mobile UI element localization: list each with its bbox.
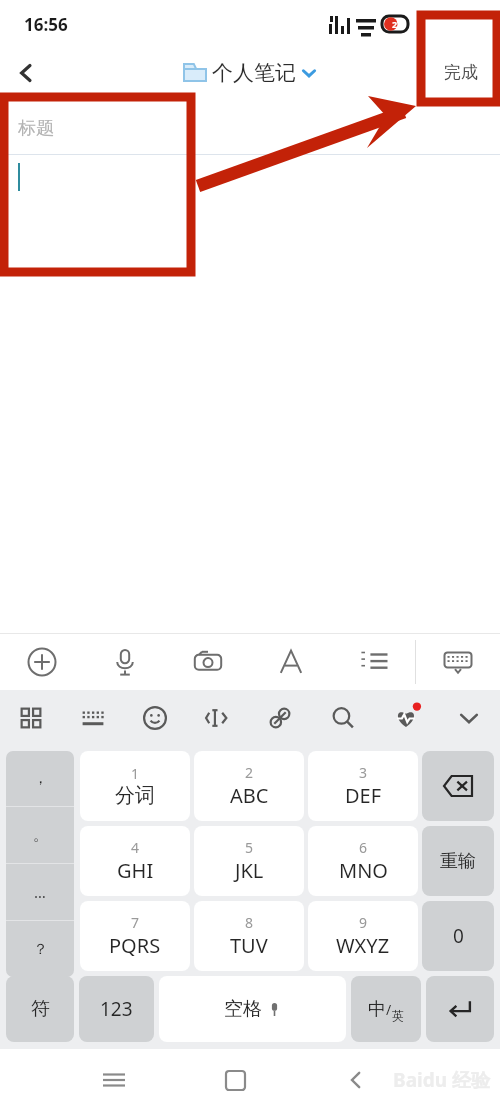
button[interactable]: 完成 [436,54,486,91]
button[interactable]: … [6,864,74,920]
staticText: 16:56 [24,13,68,36]
staticText: GHI [117,857,154,884]
button[interactable]: 8 [194,901,304,971]
staticText: 个人笔记 [212,60,296,86]
button[interactable]: Clipboard [248,690,311,746]
staticText: 8 [245,913,254,932]
button[interactable]: Delete [422,751,494,821]
button[interactable]: 空格 [159,976,346,1042]
staticText: 分词 [115,783,155,808]
staticText: 英 [392,1008,404,1023]
staticText: 3 [359,763,368,782]
staticText: 7 [131,913,140,932]
button[interactable]: 0 [422,901,494,971]
button[interactable]: Move cursor [186,690,248,746]
button[interactable]: Apps [0,690,62,746]
button[interactable]: Health [374,690,437,746]
button[interactable]: Voice [83,634,166,690]
button[interactable]: Add [0,634,83,690]
button[interactable]: Keyboard layout [62,690,124,746]
button[interactable]: Back [0,48,52,97]
staticText: 27 [392,18,403,30]
staticText: 符 [31,997,50,1021]
staticText: 0 [453,923,464,949]
staticText: / [386,1000,392,1019]
button[interactable]: 3 [308,751,418,821]
staticText: 2 [245,763,254,782]
staticText: 空格 [224,997,262,1021]
button[interactable]: Emoji [124,690,186,746]
staticText: 6 [359,838,368,857]
button[interactable]: Camera [166,634,249,690]
button[interactable]: 中 [351,976,421,1042]
staticText: JKL [235,857,264,884]
staticText: PQRS [109,932,161,959]
staticText: 标题 [18,117,54,140]
staticText: 。 [33,826,48,845]
button[interactable]: 4 [80,826,190,896]
staticText: MNO [339,857,388,884]
staticText: … [34,882,46,902]
button[interactable]: 符 [6,976,74,1042]
button[interactable]: Hide keyboard [416,634,500,690]
staticText: 1 [131,764,140,783]
staticText: WXYZ [336,932,390,959]
button[interactable]: 6 [308,826,418,896]
button[interactable]: 7 [80,901,190,971]
button[interactable]: Format text [249,634,332,690]
button[interactable]: 5 [194,826,304,896]
staticText: 9 [359,913,368,932]
staticText: 4 [131,838,140,857]
button[interactable]: 123 [79,976,154,1042]
button[interactable]: Back [332,1056,380,1104]
button[interactable]: Recents [90,1056,138,1104]
staticText: 123 [100,996,133,1022]
button[interactable]: Enter [426,976,494,1042]
button[interactable]: 1 [80,751,190,821]
button[interactable]: Hide keyboard [437,690,500,746]
staticText: 重输 [440,850,476,873]
button[interactable]: 重输 [422,826,494,896]
button[interactable]: ， [6,751,74,806]
staticText: 完成 [444,62,478,83]
staticText: 5 [245,838,254,857]
button[interactable]: 2 [194,751,304,821]
staticText: 中 [368,998,386,1021]
button[interactable]: Search [311,690,374,746]
staticText: TUV [230,932,268,959]
button[interactable]: 9 [308,901,418,971]
staticText: ？ [33,940,48,959]
button[interactable]: Home [211,1056,259,1104]
staticText: ABC [230,782,269,809]
staticText: Baidu 经验 [393,1067,490,1093]
button[interactable]: 个人笔记 [183,60,317,86]
staticText: ， [33,769,48,788]
button[interactable]: ？ [6,921,74,977]
button[interactable]: List [332,634,415,690]
button[interactable]: 。 [6,807,74,863]
staticText: DEF [345,782,382,809]
